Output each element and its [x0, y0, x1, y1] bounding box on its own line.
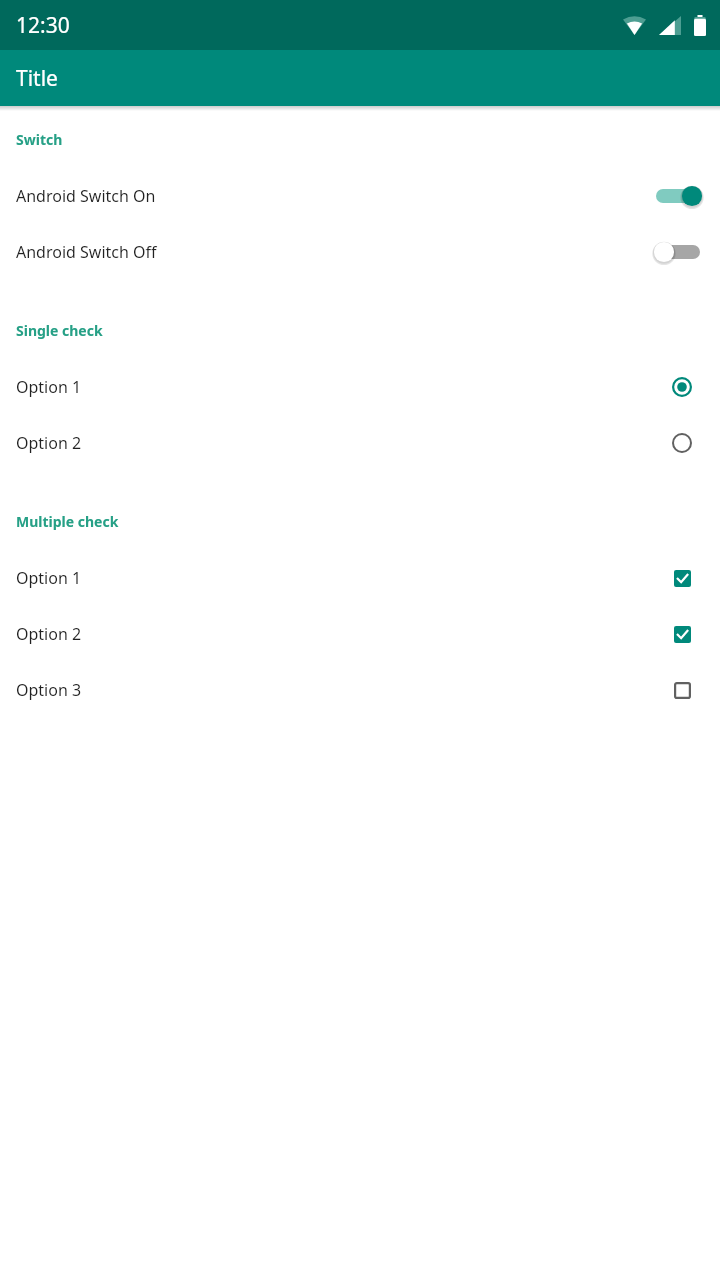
button[interactable]: Option selected	[664, 369, 700, 405]
staticText: Option 2	[16, 432, 664, 454]
button[interactable]: Option 1	[0, 359, 720, 415]
button[interactable]: Option 3	[0, 662, 720, 718]
staticText: Android Switch On	[16, 185, 656, 207]
button[interactable]: Android Switch Off	[0, 224, 720, 280]
button[interactable]: Option unchecked	[664, 672, 700, 708]
staticText: Option 1	[16, 567, 664, 589]
button[interactable]: Option 2	[0, 415, 720, 471]
button[interactable]: Android Switch On	[0, 168, 720, 224]
button[interactable]: Android Switch On toggle	[656, 182, 700, 210]
button[interactable]: Option checked	[664, 560, 700, 596]
staticText: Android Switch Off	[16, 241, 656, 263]
staticText: Title	[16, 64, 58, 93]
button[interactable]: Option checked	[664, 616, 700, 652]
button[interactable]: Option not selected	[664, 425, 700, 461]
button[interactable]: Option 1	[0, 550, 720, 606]
staticText: Option 3	[16, 679, 664, 701]
staticText: Option 1	[16, 376, 664, 398]
staticText: 12:30	[16, 11, 70, 40]
staticText: Switch	[16, 130, 63, 149]
button[interactable]: Option 2	[0, 606, 720, 662]
staticText: Multiple check	[16, 512, 119, 531]
staticText: Single check	[16, 321, 103, 340]
button[interactable]: Android Switch Off toggle	[656, 238, 700, 266]
staticText: Option 2	[16, 623, 664, 645]
